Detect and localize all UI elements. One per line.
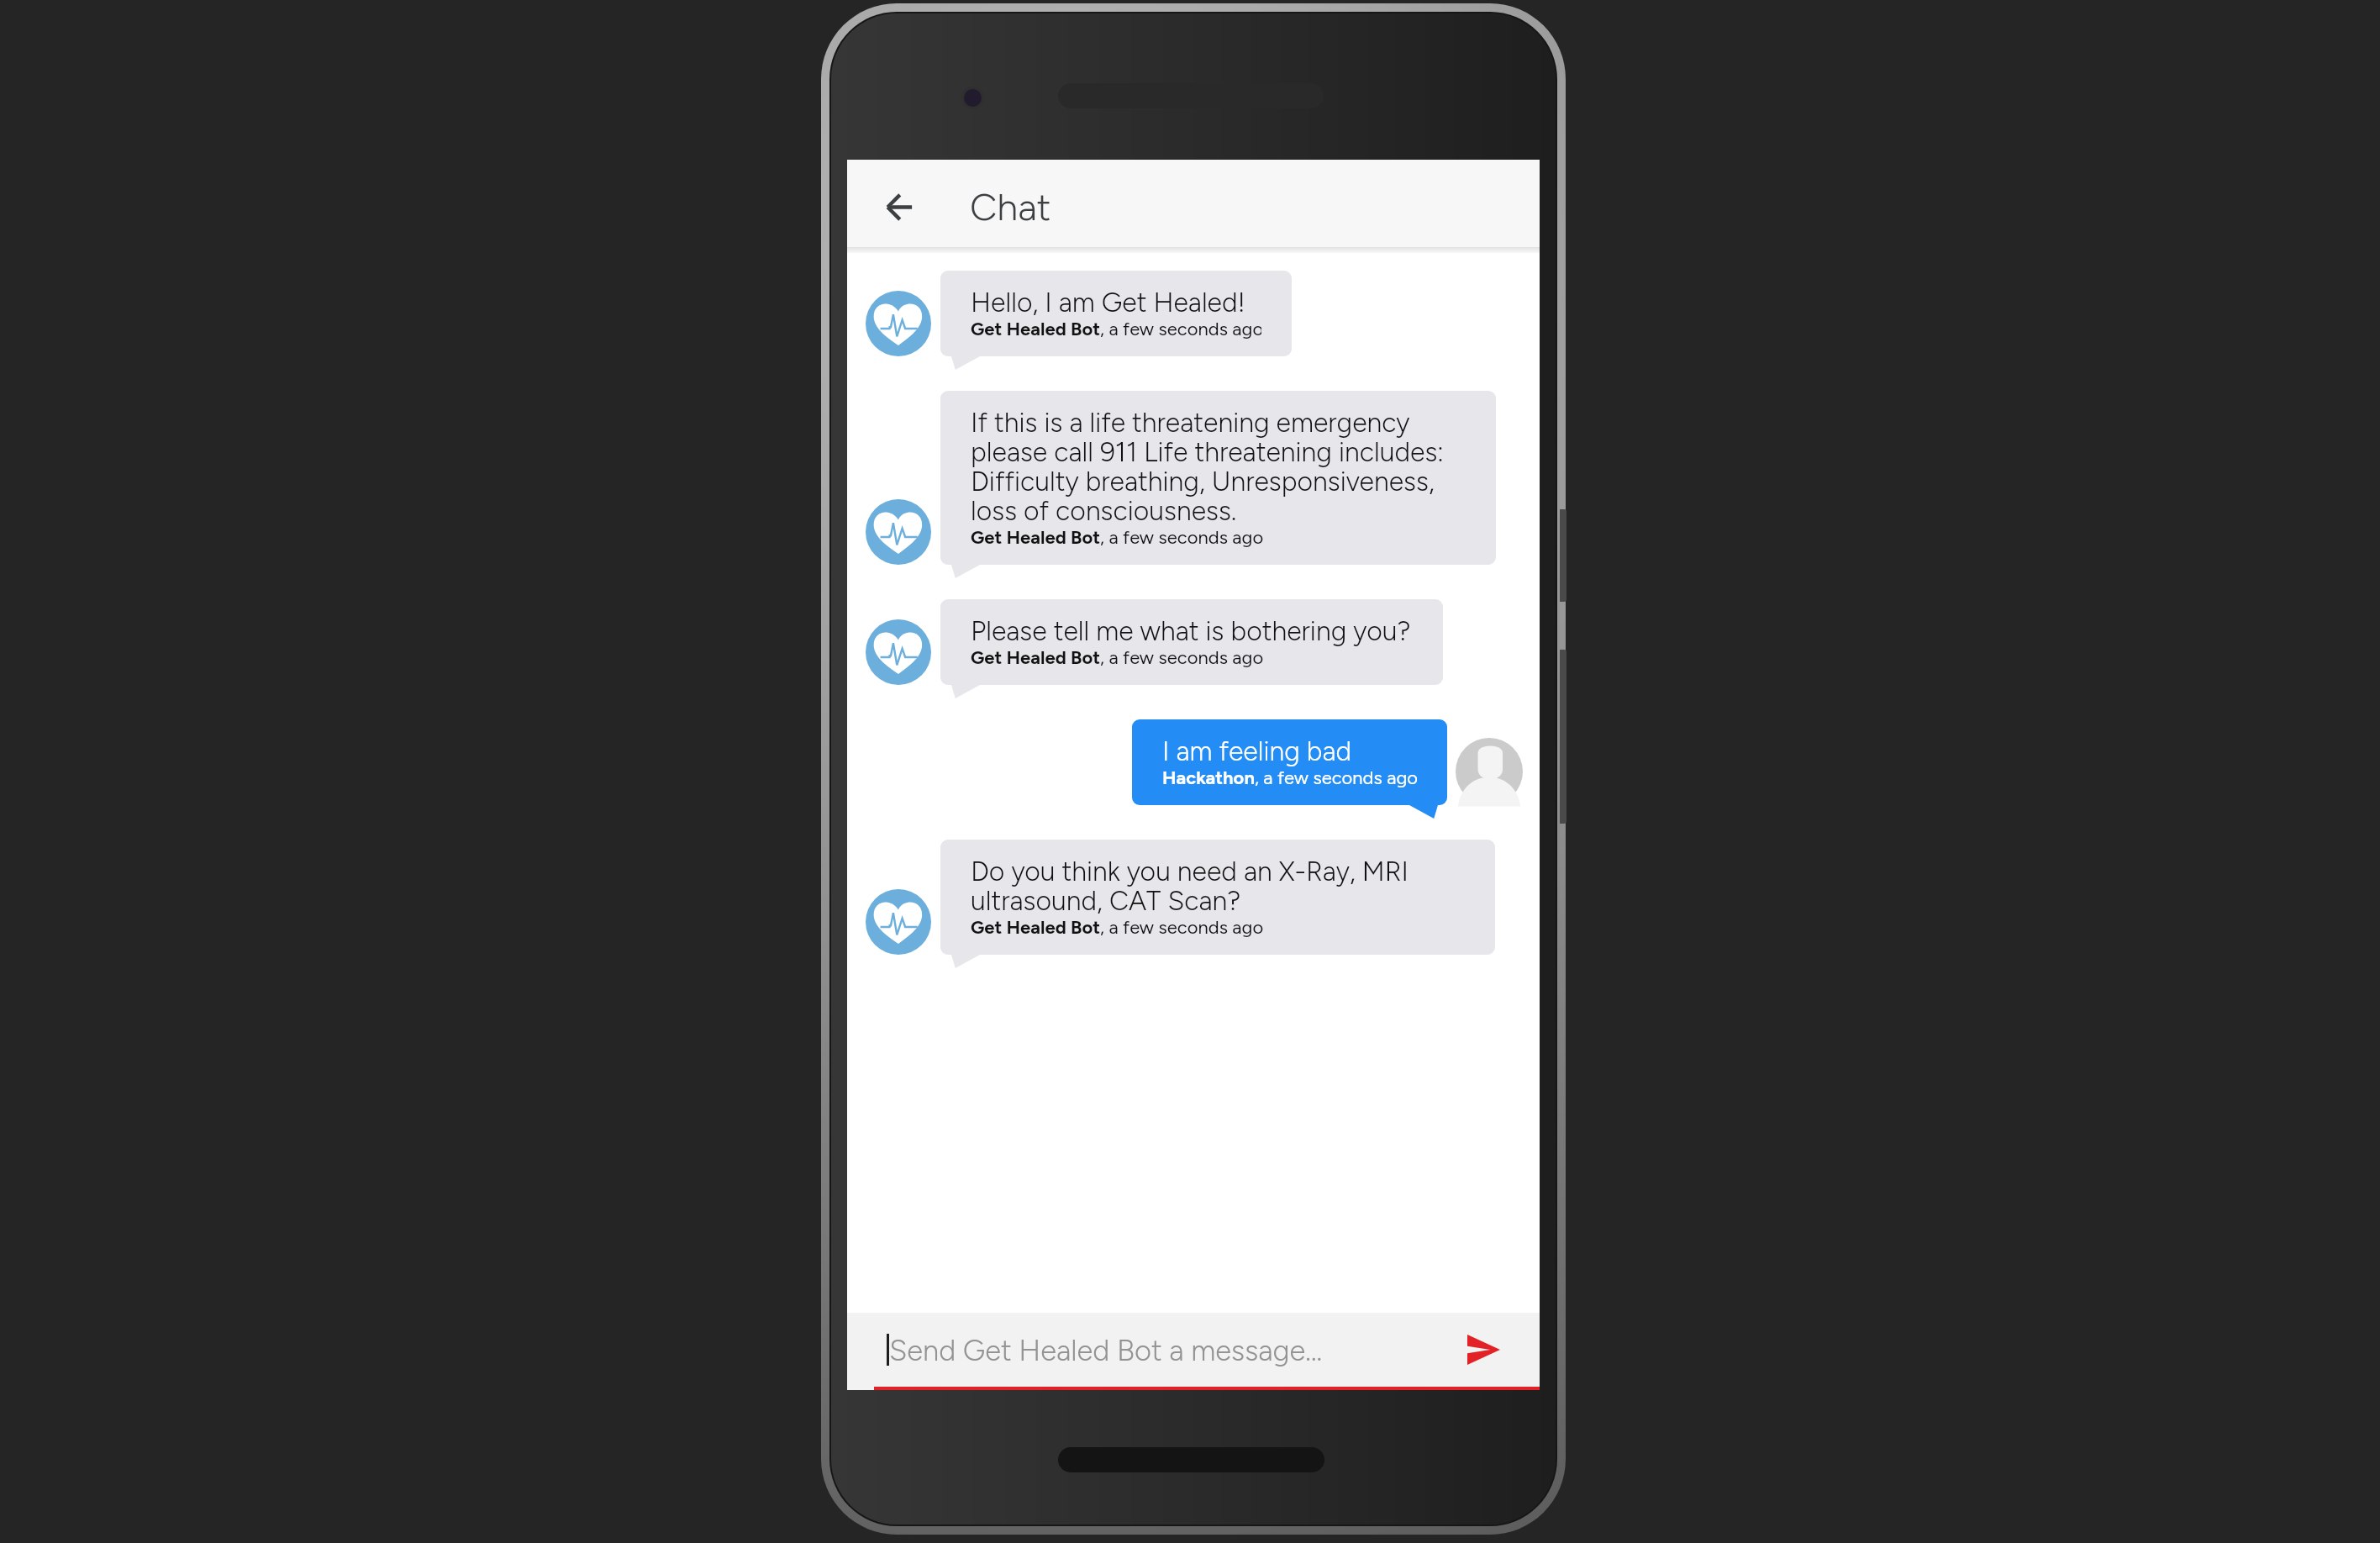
staticText: I am feeling bad — [1162, 737, 1352, 766]
button[interactable]: If this is a life threatening emergency … — [940, 391, 1496, 565]
button[interactable]: Do you think you need an X-Ray, MRI ultr… — [940, 840, 1495, 955]
staticText: Get Healed Bot, a few seconds ago — [971, 318, 1261, 340]
button[interactable]: Back — [866, 173, 933, 240]
staticText: Please tell me what is bothering you? — [971, 617, 1411, 646]
staticText: Get Healed Bot, a few seconds ago — [971, 646, 1264, 669]
staticText: Hackathon, a few seconds ago — [1162, 766, 1417, 789]
staticText: If this is a life threatening emergency … — [971, 408, 1466, 526]
staticText: Send Get Healed Bot a message... — [889, 1333, 1323, 1367]
button[interactable]: Send Get Healed Bot a message... — [847, 1313, 1540, 1387]
staticText: Get Healed Bot, a few seconds ago — [971, 916, 1264, 939]
button[interactable]: Send — [1455, 1321, 1512, 1378]
staticText: Get Healed Bot, a few seconds ago — [971, 526, 1264, 549]
button[interactable]: Please tell me what is bothering you? — [940, 599, 1443, 685]
staticText: Chat — [970, 184, 1051, 229]
button[interactable]: I am feeling bad — [1132, 719, 1447, 805]
button[interactable]: Hello, I am Get Healed! — [940, 271, 1292, 356]
staticText: Do you think you need an X-Ray, MRI ultr… — [971, 857, 1465, 916]
staticText: Hello, I am Get Healed! — [971, 288, 1245, 318]
